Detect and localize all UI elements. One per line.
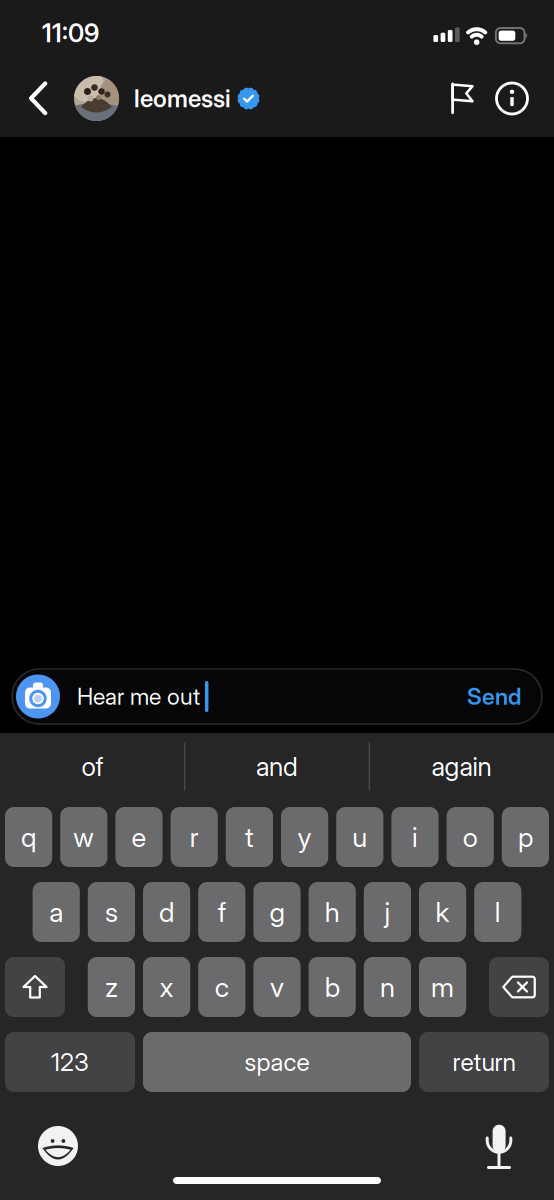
button[interactable]: Camera — [12, 674, 60, 718]
button[interactable]: s — [88, 882, 135, 942]
staticText: 11:09 — [42, 18, 99, 48]
staticText: l — [495, 895, 501, 929]
button[interactable]: return — [419, 1032, 549, 1092]
staticText: j — [384, 895, 390, 929]
button[interactable]: m — [419, 957, 466, 1017]
button[interactable]: q — [5, 807, 52, 867]
staticText: 123 — [51, 1047, 89, 1077]
button[interactable]: a — [33, 882, 80, 942]
button[interactable]: j — [364, 882, 411, 942]
button[interactable]: f — [198, 882, 245, 942]
button[interactable]: Back — [0, 81, 57, 115]
button[interactable]: d — [143, 882, 190, 942]
button[interactable]: Shift — [5, 957, 65, 1017]
staticText: r — [190, 820, 199, 854]
button[interactable]: h — [309, 882, 356, 942]
button[interactable]: u — [336, 807, 383, 867]
button[interactable]: k — [419, 882, 466, 942]
staticText: of — [81, 751, 103, 782]
button[interactable]: b — [309, 957, 356, 1017]
button[interactable]: r — [171, 807, 218, 867]
button[interactable]: space — [143, 1032, 411, 1092]
button[interactable]: z — [88, 957, 135, 1017]
staticText: and — [256, 751, 298, 782]
button[interactable]: i — [391, 807, 439, 867]
staticText: m — [431, 970, 454, 1004]
button[interactable]: Send — [467, 683, 542, 710]
staticText: x — [160, 970, 174, 1004]
button[interactable]: y — [281, 807, 328, 867]
staticText: p — [518, 820, 533, 854]
button[interactable]: leomessi profile — [57, 76, 259, 121]
button[interactable]: of — [0, 733, 185, 800]
button[interactable]: 123 — [5, 1032, 135, 1092]
staticText: u — [352, 820, 367, 854]
staticText: z — [105, 970, 118, 1004]
staticText: f — [218, 895, 226, 929]
staticText: return — [452, 1047, 515, 1077]
button[interactable]: n — [364, 957, 411, 1017]
staticText: again — [432, 751, 492, 782]
staticText: o — [463, 820, 478, 854]
staticText: d — [159, 895, 174, 929]
staticText: t — [245, 820, 254, 854]
button[interactable]: Delete — [489, 957, 549, 1017]
button[interactable]: w — [60, 807, 107, 867]
staticText: a — [49, 895, 63, 929]
staticText: c — [215, 970, 229, 1004]
staticText: space — [244, 1047, 309, 1077]
staticText: i — [412, 820, 418, 854]
button[interactable]: x — [143, 957, 190, 1017]
button[interactable]: o — [447, 807, 494, 867]
button[interactable]: Emoji — [0, 1126, 78, 1166]
staticText: g — [269, 895, 284, 929]
button[interactable]: p — [502, 807, 549, 867]
staticText: y — [298, 820, 312, 854]
button[interactable]: Message — [60, 681, 467, 712]
button[interactable]: v — [253, 957, 301, 1017]
staticText: leomessi — [134, 84, 231, 113]
button[interactable]: Dictate — [485, 1122, 554, 1170]
staticText: Send — [467, 683, 521, 710]
staticText: q — [21, 820, 36, 854]
button[interactable]: t — [226, 807, 273, 867]
staticText: k — [436, 895, 450, 929]
button[interactable]: c — [198, 957, 245, 1017]
staticText: v — [270, 970, 284, 1004]
staticText: n — [380, 970, 395, 1004]
button[interactable]: Flag — [451, 83, 496, 114]
staticText: e — [131, 820, 146, 854]
button[interactable]: again — [369, 733, 554, 800]
button[interactable]: and — [185, 733, 369, 800]
staticText: Hear me out — [77, 683, 200, 710]
staticText: h — [325, 895, 340, 929]
button[interactable]: Conversation details — [496, 82, 554, 114]
button[interactable]: e — [115, 807, 163, 867]
button[interactable]: l — [474, 882, 521, 942]
staticText: s — [105, 895, 118, 929]
staticText: w — [73, 820, 94, 854]
staticText: b — [325, 970, 340, 1004]
button[interactable]: g — [253, 882, 301, 942]
